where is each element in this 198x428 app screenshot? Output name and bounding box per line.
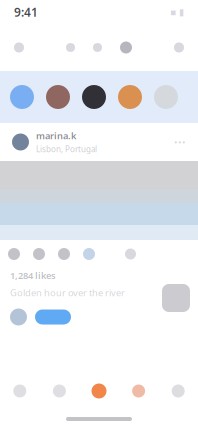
button[interactable]: Live (120, 41, 132, 53)
button[interactable]: Comment (33, 248, 45, 260)
button[interactable]: Search (40, 384, 79, 397)
button[interactable]: More options (174, 136, 186, 148)
staticText: 9:41 (14, 4, 38, 20)
button[interactable]: Story (10, 85, 34, 109)
button[interactable]: Activity (119, 384, 158, 397)
button[interactable]: Like (8, 248, 20, 260)
staticText: marina.k (36, 129, 76, 142)
button[interactable]: Profile (158, 384, 198, 397)
staticText: Golden hour over the river (10, 286, 125, 299)
button[interactable]: Add a comment (35, 309, 71, 324)
button[interactable]: For you (93, 43, 102, 52)
button[interactable]: Share (58, 248, 70, 260)
button[interactable]: Bookmark (125, 248, 136, 259)
button[interactable]: Following (66, 43, 75, 52)
button[interactable]: Messages (174, 42, 184, 52)
button[interactable]: Story (82, 85, 106, 109)
button[interactable]: Story (118, 85, 142, 109)
staticText: Lisbon, Portugal (36, 144, 97, 154)
staticText: ▪ ▮ (170, 7, 184, 17)
button[interactable]: Create (79, 383, 119, 398)
button[interactable]: Saved (83, 248, 95, 260)
button[interactable]: Story (46, 85, 70, 109)
staticText: 1,284 likes (10, 269, 56, 281)
button[interactable]: Home (0, 384, 40, 397)
button[interactable]: Menu (14, 42, 24, 52)
button[interactable]: Story (154, 85, 178, 109)
staticText: ••• (174, 136, 186, 148)
